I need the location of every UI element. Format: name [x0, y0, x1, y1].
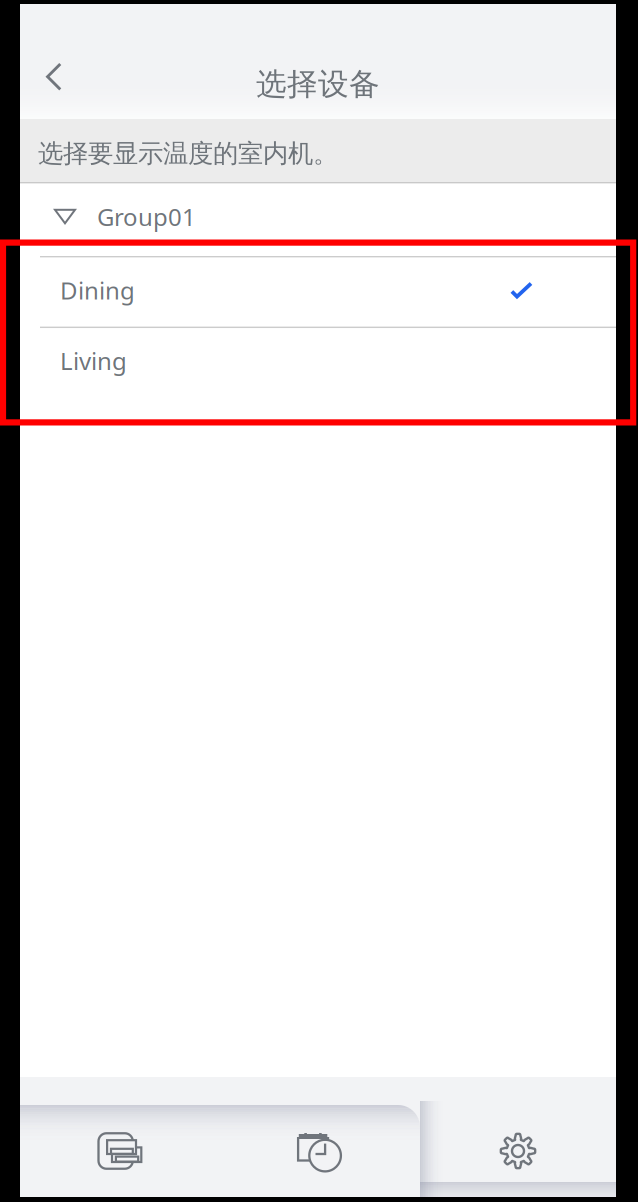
- staticText: 选择要显示温度的室内机。: [38, 138, 338, 169]
- button[interactable]: Indoor units: [20, 1105, 220, 1197]
- button[interactable]: Schedule: [220, 1105, 420, 1197]
- button[interactable]: Dining: [20, 258, 616, 327]
- button[interactable]: Back: [20, 35, 88, 119]
- button[interactable]: Group01: [20, 184, 616, 256]
- staticText: Living: [60, 345, 127, 377]
- button[interactable]: Living: [20, 328, 616, 397]
- staticText: 选择设备: [256, 65, 380, 103]
- staticText: Group01: [97, 201, 196, 233]
- staticText: Dining: [60, 274, 135, 306]
- button[interactable]: Settings: [420, 1105, 616, 1197]
